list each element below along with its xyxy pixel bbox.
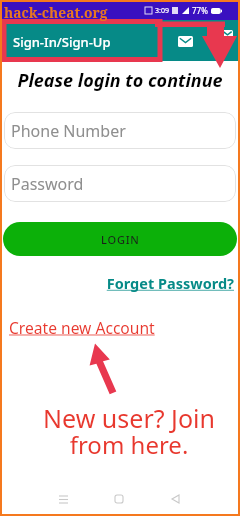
staticText: hack-cheat.org — [4, 3, 108, 22]
staticText: Please login to continue — [0, 68, 240, 93]
button[interactable]: Mail — [222, 30, 233, 38]
button[interactable]: LOGIN — [3, 222, 237, 256]
button[interactable]: Recent apps — [50, 486, 76, 512]
button[interactable]: Phone Number — [4, 112, 236, 149]
staticText: from here. — [18, 428, 240, 461]
staticText: Phone Number — [11, 120, 126, 142]
staticText: New user? Join — [18, 401, 240, 435]
staticText: Password — [11, 173, 84, 195]
button[interactable]: Home — [106, 486, 132, 512]
button[interactable]: Create new Account — [9, 317, 155, 338]
button[interactable]: Forget Password? — [0, 273, 234, 293]
button[interactable]: Password — [4, 165, 236, 202]
staticText: LOGIN — [101, 232, 140, 247]
staticText: 3:09 — [155, 6, 169, 16]
button[interactable]: Back — [162, 486, 188, 512]
button[interactable]: Messages — [178, 36, 193, 47]
staticText: 77% — [192, 5, 208, 16]
staticText: Sign-In/Sign-Up — [13, 33, 111, 51]
